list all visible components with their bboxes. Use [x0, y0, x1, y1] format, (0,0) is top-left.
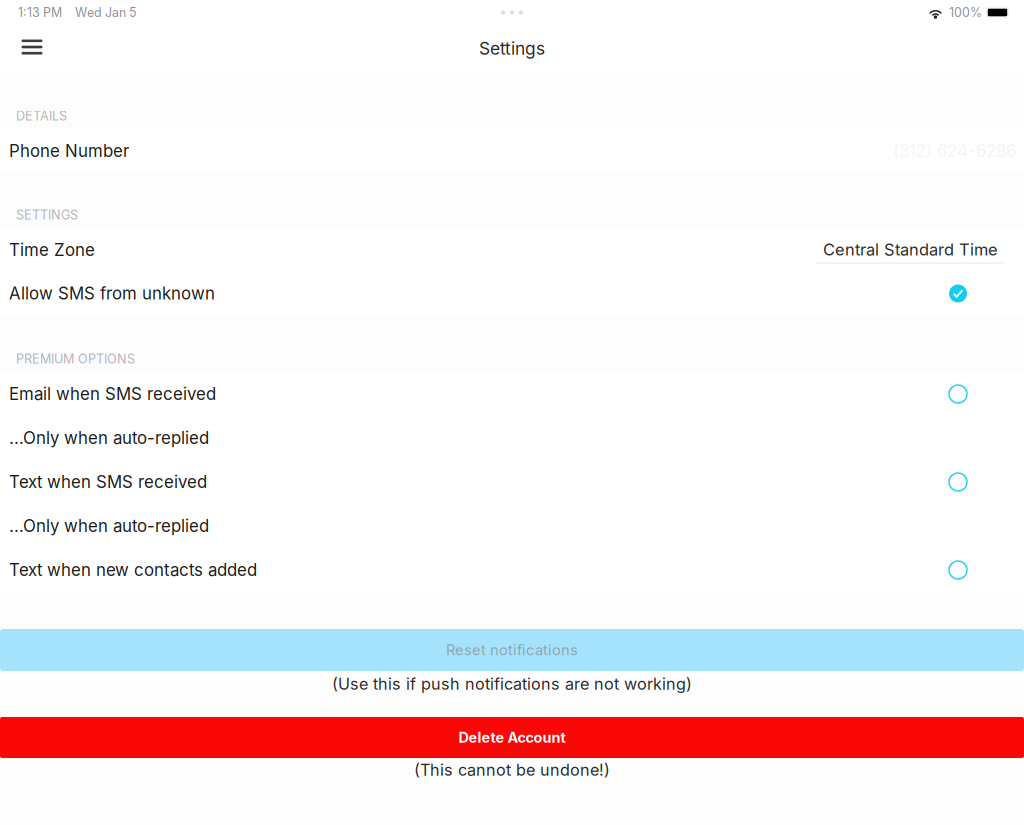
staticText: Text when SMS received — [9, 472, 207, 492]
staticText: SETTINGS — [16, 207, 78, 223]
staticText: Text when new contacts added — [9, 560, 257, 580]
staticText: Central Standard Time — [823, 240, 998, 259]
staticText: (Use this if push notifications are not … — [332, 674, 692, 694]
staticText: Delete Account — [458, 729, 565, 746]
button[interactable]: Time Zone — [0, 228, 1024, 272]
staticText: DETAILS — [16, 108, 67, 124]
button[interactable]: Menu — [10, 28, 54, 69]
staticText: ...Only when auto-replied — [9, 428, 209, 448]
staticText: Allow SMS from unknown — [9, 283, 215, 304]
button[interactable]: ...Only when auto-replied — [0, 504, 1024, 548]
staticText: PREMIUM OPTIONS — [16, 351, 135, 367]
staticText: Settings — [479, 38, 545, 59]
button[interactable]: Phone Number — [0, 129, 1024, 173]
staticText: ...Only when auto-replied — [9, 516, 209, 536]
button[interactable]: Allow SMS from unknown — [0, 272, 1024, 315]
staticText: (312) 624-6286 — [893, 141, 1016, 161]
button[interactable]: Text when new contacts added — [0, 548, 1024, 592]
staticText: Email when SMS received — [9, 384, 216, 404]
staticText: Phone Number — [9, 141, 129, 161]
button[interactable]: Delete Account — [0, 717, 1024, 758]
button[interactable]: Reset notifications — [0, 629, 1024, 671]
staticText: Time Zone — [9, 240, 95, 260]
staticText: Reset notifications — [446, 641, 578, 659]
staticText: 100% — [949, 5, 982, 20]
button[interactable]: ...Only when auto-replied — [0, 416, 1024, 460]
button[interactable]: Text when SMS received — [0, 460, 1024, 504]
staticText: 1:13 PM — [18, 5, 62, 20]
staticText: Wed Jan 5 — [75, 5, 137, 20]
staticText: (This cannot be undone!) — [414, 760, 610, 780]
button[interactable]: Email when SMS received — [0, 372, 1024, 416]
